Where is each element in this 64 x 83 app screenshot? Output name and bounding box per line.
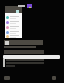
button[interactable] bbox=[5, 35, 22, 38]
button[interactable] bbox=[5, 25, 22, 30]
button[interactable] bbox=[5, 15, 22, 20]
button[interactable] bbox=[5, 20, 22, 25]
button[interactable] bbox=[5, 30, 22, 35]
